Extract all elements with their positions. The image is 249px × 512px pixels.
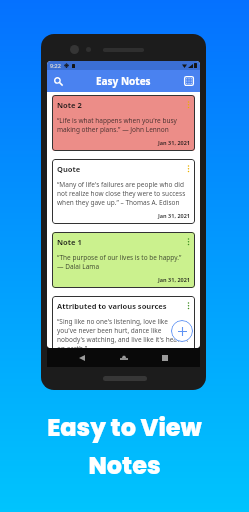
staticText: “Life is what happens when you're busy m… [57,116,190,134]
staticText: Quote [57,164,81,174]
staticText: 9:22 [50,62,61,69]
button[interactable]: Search [50,73,66,89]
staticText: “Sing like no one's listening, love like… [57,317,188,348]
button[interactable]: Grid view [181,73,197,89]
staticText: Jan 31, 2021 [158,139,190,146]
staticText: Note 1 [57,237,82,247]
staticText: “The purpose of our lives is to be happy… [57,253,182,271]
button[interactable]: Recents [158,351,172,365]
button[interactable]: Note 1 [52,232,195,288]
button[interactable]: Attributed to various sources [52,296,195,348]
staticText: Jan 31, 2021 [158,212,190,219]
staticText: Easy Notes [96,74,151,88]
staticText: Notes [88,449,161,483]
staticText: Note 2 [57,100,82,110]
button[interactable]: Home [117,351,131,365]
staticText: Jan 31, 2021 [158,276,190,283]
button[interactable]: Add note [171,320,193,342]
staticText: “Many of life's failures are people who … [57,180,190,207]
button[interactable]: Note 2 [52,95,195,151]
button[interactable]: Back [75,351,89,365]
staticText: Attributed to various sources [57,301,167,311]
button[interactable]: Quote [52,159,195,224]
staticText: Easy to View [47,411,202,445]
